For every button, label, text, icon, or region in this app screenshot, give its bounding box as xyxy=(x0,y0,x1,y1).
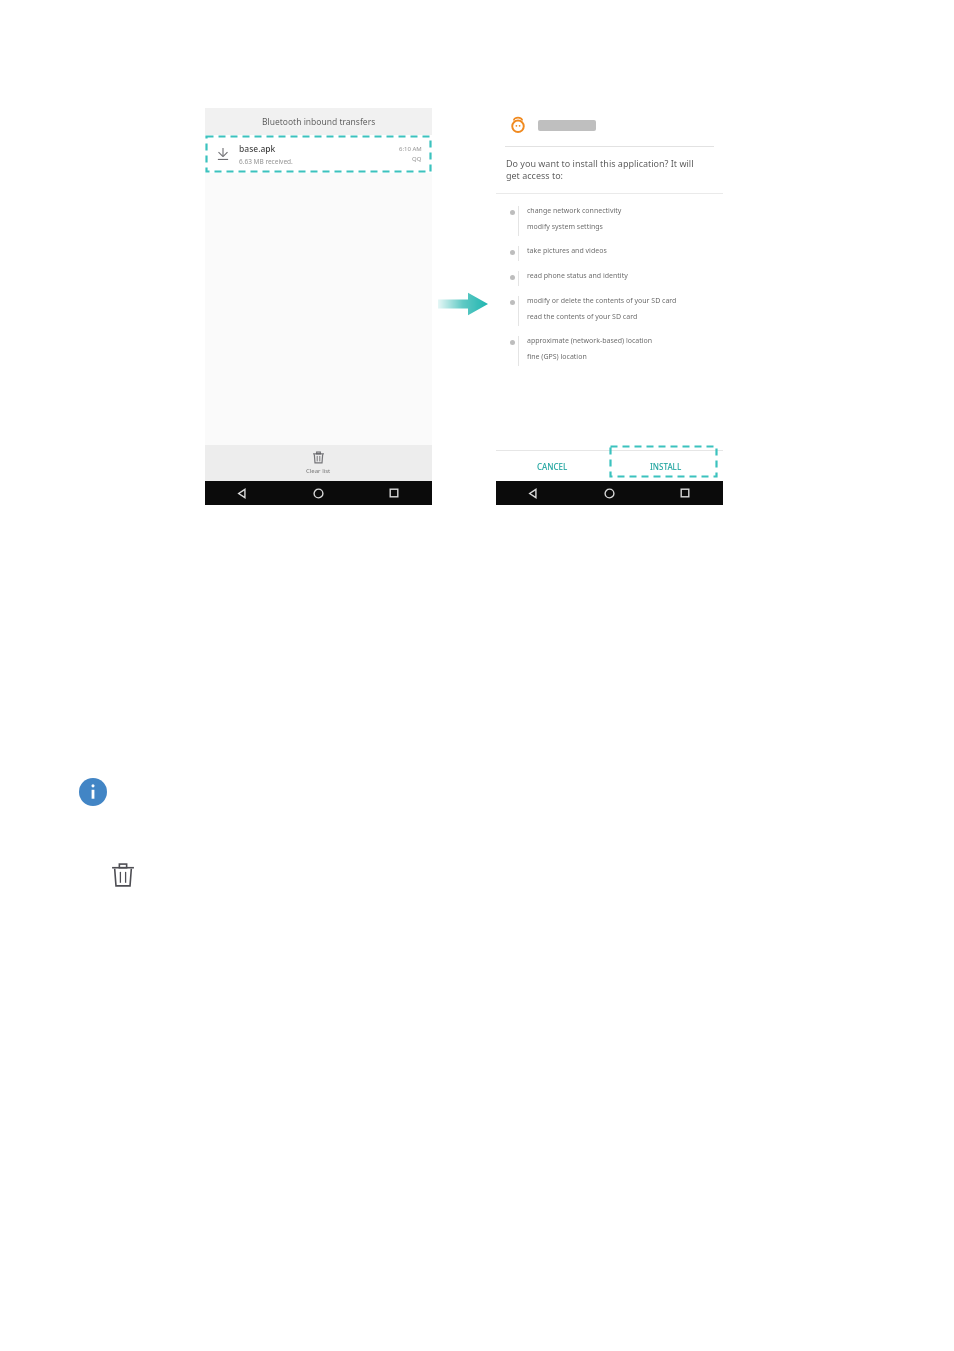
staticText: QQ xyxy=(412,155,422,163)
staticText: read the contents of your SD card xyxy=(527,312,638,322)
button[interactable]: base.apk xyxy=(205,135,432,173)
staticText: take pictures and videos xyxy=(527,246,607,256)
staticText: Bluetooth inbound transfers xyxy=(262,116,376,128)
other: Home xyxy=(313,488,324,499)
staticText: change network connectivity xyxy=(527,206,622,216)
staticText: base.apk xyxy=(239,143,276,155)
staticText: 6.63 MB received. xyxy=(239,157,293,166)
staticText: read phone status and identity xyxy=(527,271,628,281)
button[interactable]: INSTALL xyxy=(609,451,723,481)
staticText: Clear list xyxy=(306,467,331,475)
button[interactable]: CANCEL xyxy=(496,451,609,481)
staticText: fine (GPS) location xyxy=(527,352,587,362)
other: Recents xyxy=(680,488,690,498)
staticText: 6:10 AM xyxy=(399,145,422,153)
other: Recents xyxy=(389,488,399,498)
staticText: modify or delete the contents of your SD… xyxy=(527,296,677,306)
staticText: Do you want to install this application?… xyxy=(506,157,709,182)
staticText: modify system settings xyxy=(527,222,603,232)
other: Delete xyxy=(110,862,136,888)
other: Back xyxy=(528,488,539,499)
staticText: approximate (network-based) location xyxy=(527,336,653,346)
staticText: INSTALL xyxy=(650,461,682,472)
other: Back xyxy=(237,488,248,499)
staticText: CANCEL xyxy=(537,461,568,472)
button[interactable]: Clear list xyxy=(205,445,432,481)
other: Home xyxy=(604,488,615,499)
button[interactable]: Information xyxy=(79,778,107,806)
